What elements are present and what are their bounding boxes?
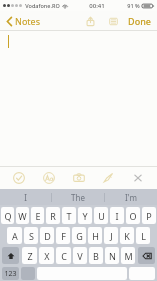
button[interactable]: J: [104, 227, 118, 244]
button[interactable]: Camera: [68, 167, 90, 189]
button[interactable]: A: [7, 227, 22, 244]
button[interactable]: X: [39, 247, 54, 264]
staticText: O: [129, 210, 137, 222]
button[interactable]: T: [62, 207, 76, 224]
staticText: Q: [4, 210, 12, 222]
staticText: Vodafone.RO: [25, 2, 60, 9]
button[interactable]: Done: [126, 13, 153, 29]
staticText: W: [18, 210, 27, 222]
staticText: E: [35, 210, 41, 222]
staticText: P: [146, 210, 152, 222]
staticText: 00:41: [89, 2, 105, 10]
staticText: X: [44, 250, 50, 262]
staticText: Notes: [15, 15, 40, 27]
staticText: The: [71, 192, 85, 203]
staticText: N: [109, 250, 116, 262]
button[interactable]: M: [121, 247, 135, 264]
button[interactable]: New note: [105, 13, 121, 29]
button[interactable]: Z: [22, 247, 37, 264]
button[interactable]: S: [24, 227, 38, 244]
button[interactable]: H: [88, 227, 102, 244]
staticText: I'm: [125, 192, 137, 203]
staticText: I: [24, 192, 27, 203]
button[interactable]: V: [73, 247, 87, 264]
button[interactable]: Numbers: [2, 267, 19, 280]
button[interactable]: L: [136, 227, 150, 244]
staticText: F: [61, 230, 66, 242]
button[interactable]: Return: [129, 267, 155, 280]
staticText: G: [76, 230, 83, 242]
staticText: D: [44, 230, 51, 242]
button[interactable]: P: [142, 207, 156, 224]
button[interactable]: I: [110, 207, 124, 224]
button[interactable]: Draw: [97, 167, 119, 189]
button[interactable]: Checklist: [8, 167, 30, 189]
button[interactable]: D: [40, 227, 54, 244]
button[interactable]: O: [126, 207, 140, 224]
button[interactable]: R: [46, 207, 60, 224]
staticText: B: [93, 250, 99, 262]
staticText: C: [61, 250, 67, 262]
button[interactable]: W: [16, 207, 29, 224]
staticText: L: [141, 230, 146, 242]
button[interactable]: Q: [1, 207, 14, 224]
button[interactable]: G: [72, 227, 86, 244]
staticText: Done: [128, 15, 151, 27]
button[interactable]: E: [31, 207, 44, 224]
staticText: J: [110, 230, 113, 242]
staticText: S: [29, 230, 34, 242]
button[interactable]: N: [105, 247, 119, 264]
button[interactable]: Share: [82, 13, 98, 29]
button[interactable]: The: [52, 189, 104, 205]
staticText: Z: [27, 250, 33, 262]
button[interactable]: Backspace: [138, 247, 155, 264]
staticText: Y: [82, 210, 88, 222]
staticText: 123: [4, 269, 17, 279]
button[interactable]: Notes: [4, 13, 42, 29]
staticText: R: [50, 210, 56, 222]
button[interactable]: Shift: [2, 247, 19, 264]
staticText: H: [92, 230, 99, 242]
button[interactable]: Hide keyboard: [127, 167, 149, 189]
staticText: T: [66, 210, 72, 222]
staticText: M: [124, 250, 133, 262]
button[interactable]: I: [0, 189, 51, 205]
button[interactable]: C: [56, 247, 71, 264]
staticText: A: [12, 230, 18, 242]
staticText: U: [98, 210, 105, 222]
staticText: V: [77, 250, 83, 262]
staticText: 91 %: [127, 2, 140, 9]
button[interactable]: U: [94, 207, 108, 224]
button[interactable]: I'm: [105, 189, 157, 205]
staticText: I: [115, 210, 119, 222]
button[interactable]: B: [89, 247, 103, 264]
button[interactable]: Formatting: [38, 167, 60, 189]
staticText: K: [124, 230, 130, 242]
button[interactable]: K: [120, 227, 134, 244]
button[interactable]: F: [56, 227, 70, 244]
button[interactable]: Y: [78, 207, 92, 224]
